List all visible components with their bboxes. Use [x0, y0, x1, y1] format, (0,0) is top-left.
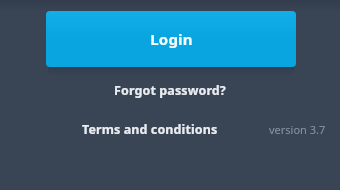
staticText: Forgot password?: [114, 82, 226, 99]
button[interactable]: Terms and conditions: [82, 118, 240, 140]
staticText: Terms and conditions: [82, 121, 218, 138]
staticText: version 3.7: [269, 122, 326, 137]
staticText: Login: [150, 29, 193, 49]
button[interactable]: Forgot password?: [108, 79, 232, 101]
button[interactable]: Login: [46, 11, 296, 67]
